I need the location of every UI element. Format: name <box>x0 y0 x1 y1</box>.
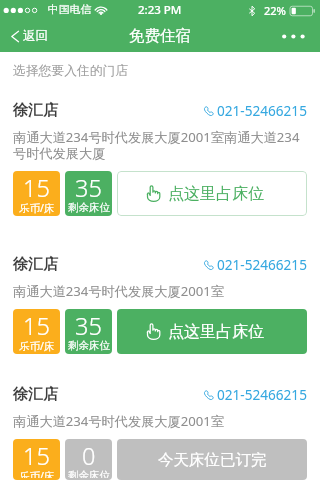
button[interactable]: 徐汇店 <box>0 101 320 216</box>
staticText: 徐汇店 <box>13 255 58 274</box>
staticText: 021-52466215 <box>217 101 307 120</box>
staticText: 021-52466215 <box>217 255 307 274</box>
button[interactable]: 徐汇店 <box>0 385 320 480</box>
button[interactable]: More options <box>272 25 320 48</box>
staticText: 点这里占床位 <box>168 184 264 204</box>
staticText: 免费住宿 <box>129 26 191 46</box>
staticText: 点这里占床位 <box>168 322 264 342</box>
staticText: 021-52466215 <box>217 385 307 404</box>
staticText: 中国电信 <box>48 3 92 17</box>
staticText: 22% <box>264 3 286 18</box>
button[interactable]: 15 <box>13 171 60 216</box>
button[interactable]: 35 <box>65 171 112 216</box>
staticText: 乐币/床 <box>19 201 55 214</box>
staticText: 徐汇店 <box>13 101 58 120</box>
button[interactable]: 点这里占床位 <box>117 309 307 354</box>
staticText: 今天床位已订完 <box>158 450 267 470</box>
button[interactable]: Call 021-52466215 <box>204 385 307 404</box>
button[interactable]: Call 021-52466215 <box>204 101 307 120</box>
staticText: 15 <box>23 440 50 472</box>
button[interactable]: 15 <box>13 309 60 354</box>
staticText: 15 <box>23 172 50 204</box>
button[interactable]: Call 021-52466215 <box>204 255 307 274</box>
staticText: 南通大道234号时代发展大厦2001室南通大道234号时代发展大厦 <box>13 128 307 162</box>
button[interactable]: 点这里占床位 <box>117 171 307 216</box>
staticText: 剩余床位 <box>68 469 110 478</box>
staticText: 乐币/床 <box>19 339 55 352</box>
button[interactable]: 35 <box>65 309 112 354</box>
staticText: 2:23 PM <box>138 2 182 18</box>
staticText: 剩余床位 <box>68 339 110 352</box>
button[interactable]: 15 <box>13 439 60 480</box>
button[interactable]: 0 <box>65 439 112 480</box>
staticText: 乐币/床 <box>19 469 55 478</box>
staticText: 选择您要入住的门店 <box>13 63 129 79</box>
button[interactable]: 返回 <box>0 22 58 50</box>
staticText: 南通大道234号时代发展大厦2001室 <box>13 412 225 430</box>
staticText: 0 <box>82 440 96 472</box>
button[interactable]: 今天床位已订完 <box>117 439 307 480</box>
staticText: 返回 <box>23 28 48 44</box>
staticText: 35 <box>75 172 102 204</box>
staticText: 35 <box>75 310 102 342</box>
staticText: 徐汇店 <box>13 385 58 404</box>
staticText: 剩余床位 <box>68 201 110 214</box>
staticText: 15 <box>23 310 50 342</box>
staticText: 南通大道234号时代发展大厦2001室 <box>13 282 225 300</box>
button[interactable]: 徐汇店 <box>0 255 320 354</box>
